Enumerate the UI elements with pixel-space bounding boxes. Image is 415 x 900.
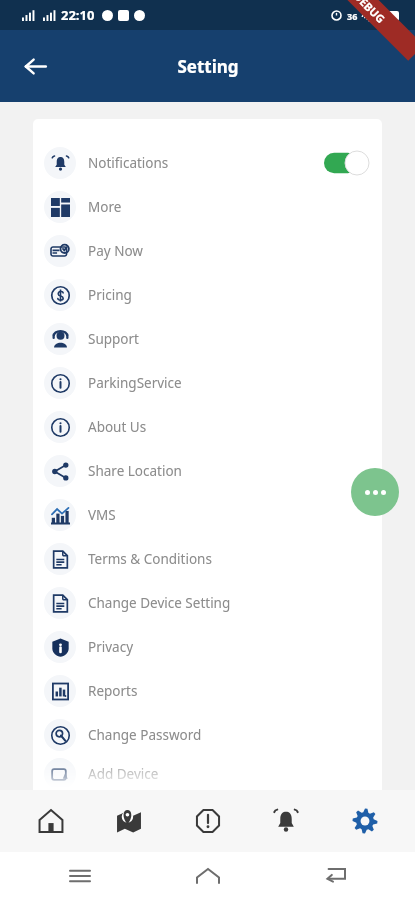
staticText: Reports	[88, 682, 138, 700]
button[interactable]: Back	[315, 856, 355, 896]
button[interactable]: Recent apps	[60, 856, 100, 896]
button[interactable]: Notifications	[33, 141, 382, 185]
staticText: VMS	[88, 506, 116, 524]
button[interactable]: More actions	[351, 468, 399, 516]
button[interactable]: Share Location	[33, 449, 382, 493]
staticText: Change Device Setting	[88, 594, 231, 612]
staticText: Terms & Conditions	[88, 550, 212, 568]
button[interactable]: bell	[258, 793, 314, 849]
staticText: 36	[347, 10, 358, 22]
button[interactable]: Add Device	[33, 757, 382, 790]
button[interactable]: Back	[12, 43, 58, 89]
button[interactable]: Reports	[33, 669, 382, 713]
button[interactable]: Pay Now	[33, 229, 382, 273]
staticText: Add Device	[88, 765, 159, 783]
staticText: ParkingService	[88, 374, 182, 392]
button[interactable]: map	[101, 793, 157, 849]
staticText: Notifications	[88, 154, 169, 172]
button[interactable]: Notifications toggle	[324, 150, 370, 176]
button[interactable]: ParkingService	[33, 361, 382, 405]
button[interactable]: Privacy	[33, 625, 382, 669]
staticText: 22:10	[61, 6, 95, 24]
button[interactable]: Terms & Conditions	[33, 537, 382, 581]
button[interactable]: About Us	[33, 405, 382, 449]
staticText: Change Password	[88, 726, 202, 744]
staticText: DEBUG	[351, 0, 388, 26]
button[interactable]: Change Password	[33, 713, 382, 757]
staticText: Privacy	[88, 638, 134, 656]
staticText: Share Location	[88, 462, 182, 480]
button[interactable]: Change Device Setting	[33, 581, 382, 625]
button[interactable]: Pricing	[33, 273, 382, 317]
staticText: Support	[88, 330, 139, 348]
staticText: More	[88, 198, 122, 216]
button[interactable]: Support	[33, 317, 382, 361]
staticText: Pay Now	[88, 242, 143, 260]
button[interactable]: More	[33, 185, 382, 229]
staticText: Setting	[177, 55, 239, 78]
staticText: Pricing	[88, 286, 132, 304]
button[interactable]: home	[23, 793, 79, 849]
button[interactable]: gear	[337, 793, 393, 849]
button[interactable]: VMS	[33, 493, 382, 537]
button[interactable]: alert	[180, 793, 236, 849]
staticText: About Us	[88, 418, 147, 436]
button[interactable]: Home	[188, 856, 228, 896]
